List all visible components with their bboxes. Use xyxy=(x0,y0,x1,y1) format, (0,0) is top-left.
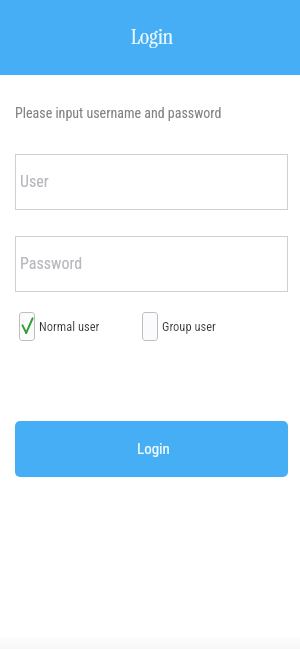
button[interactable]: Password xyxy=(15,236,288,292)
staticText: Normal user xyxy=(39,319,100,334)
staticText: Login xyxy=(131,22,174,51)
staticText: Group user xyxy=(162,319,216,334)
button[interactable]: Group user xyxy=(142,312,216,341)
staticText: User xyxy=(20,172,49,191)
staticText: Please input username and password xyxy=(15,105,222,121)
button[interactable]: User xyxy=(15,154,288,210)
button[interactable]: Login xyxy=(15,421,288,477)
button[interactable]: Normal user xyxy=(19,312,100,341)
staticText: Password xyxy=(20,254,83,273)
staticText: Login xyxy=(137,440,170,458)
